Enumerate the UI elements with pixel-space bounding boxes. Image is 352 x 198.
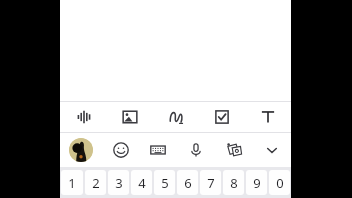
button[interactable]: 9: [246, 170, 267, 195]
button[interactable]: Profile: [60, 133, 102, 167]
button[interactable]: 6: [177, 170, 198, 195]
button[interactable]: Emoji: [102, 133, 139, 167]
button[interactable]: Keyboard: [139, 133, 177, 167]
staticText: 0: [276, 174, 284, 192]
staticText: 3: [115, 174, 123, 192]
staticText: 9: [253, 174, 261, 192]
button[interactable]: 2: [85, 170, 106, 195]
button[interactable]: Insert task: [199, 102, 245, 132]
button[interactable]: Insert picture: [107, 102, 153, 132]
staticText: 4: [138, 174, 146, 192]
staticText: 5: [161, 174, 169, 192]
button[interactable]: 4: [131, 170, 152, 195]
button[interactable]: 1: [61, 170, 83, 195]
staticText: 2: [92, 174, 100, 192]
staticText: 7: [207, 174, 215, 192]
button[interactable]: 3: [108, 170, 129, 195]
button[interactable]: Text formatting: [245, 102, 291, 132]
button[interactable]: 5: [154, 170, 175, 195]
button[interactable]: 0: [269, 170, 290, 195]
button[interactable]: Show more: [253, 133, 291, 167]
button[interactable]: 8: [223, 170, 244, 195]
button[interactable]: Audio message: [60, 102, 107, 132]
button[interactable]: Stickers and GIFs: [215, 133, 253, 167]
staticText: 8: [230, 174, 238, 192]
staticText: 6: [184, 174, 192, 192]
button[interactable]: Draw or sign: [153, 102, 199, 132]
staticText: 1: [68, 174, 76, 192]
button[interactable]: 7: [200, 170, 221, 195]
button[interactable]: Voice input: [177, 133, 215, 167]
